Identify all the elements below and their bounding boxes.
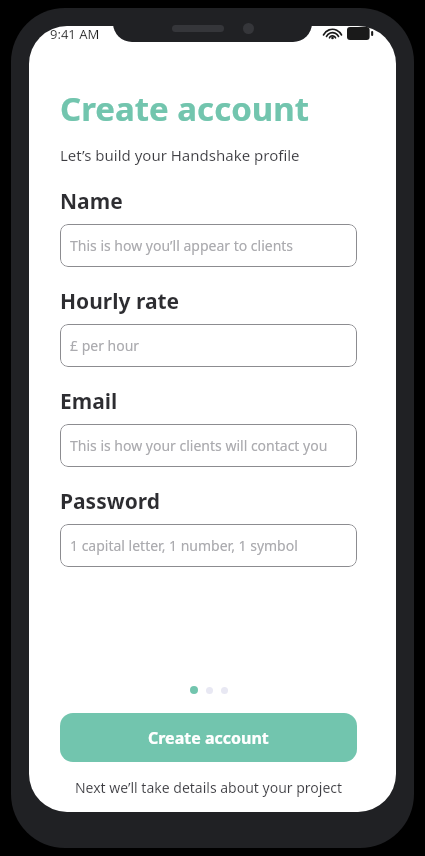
button[interactable] (190, 686, 198, 694)
staticText: Create account (148, 727, 269, 749)
staticText: Hourly rate (60, 287, 180, 316)
staticText: Let’s build your Handshake profile (60, 145, 300, 165)
button[interactable]: 1 capital letter, 1 number, 1 symbol (60, 524, 357, 567)
button[interactable]: Create account (60, 713, 357, 762)
button[interactable]: This is how your clients will contact yo… (60, 424, 357, 467)
staticText: Create account (60, 86, 310, 131)
staticText: Email (60, 387, 118, 416)
staticText: This is how your clients will contact yo… (70, 436, 328, 455)
other: Battery full (347, 27, 373, 40)
staticText: This is how you’ll appear to clients (70, 236, 294, 255)
staticText: 9:41 AM (50, 25, 100, 43)
staticText: Password (60, 487, 161, 516)
button[interactable] (221, 687, 228, 694)
staticText: Name (60, 187, 123, 216)
staticText: £ per hour (70, 336, 140, 355)
other: Wi-Fi signal (325, 28, 340, 40)
staticText: 1 capital letter, 1 number, 1 symbol (70, 536, 298, 555)
button[interactable]: This is how you’ll appear to clients (60, 224, 357, 267)
button[interactable]: £ per hour (60, 324, 357, 367)
staticText: Next we’ll take details about your proje… (60, 778, 357, 797)
button[interactable] (206, 687, 213, 694)
